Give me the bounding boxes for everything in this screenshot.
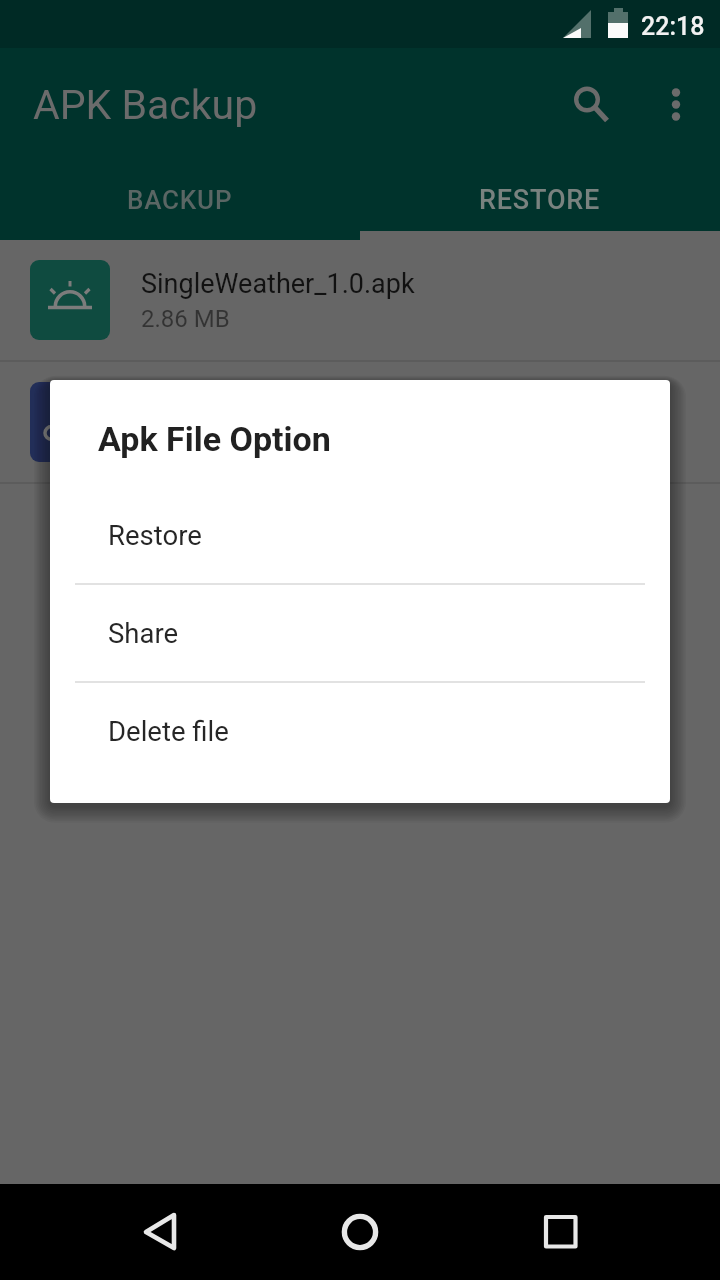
staticText: SingleWeather_1.0.apk bbox=[141, 268, 415, 300]
button[interactable]: Search bbox=[551, 69, 623, 141]
button[interactable]: SingleWeather_1.0.apk bbox=[0, 240, 720, 360]
button[interactable]: More options bbox=[640, 69, 712, 141]
staticText: 22:18 bbox=[641, 12, 705, 41]
staticText: Share bbox=[108, 617, 179, 649]
button[interactable]: Share bbox=[50, 585, 670, 681]
button[interactable]: Restore bbox=[50, 487, 670, 583]
staticText: BACKUP bbox=[127, 185, 233, 215]
staticText: Restore bbox=[108, 519, 202, 551]
staticText: Apk File Option bbox=[98, 419, 331, 459]
button[interactable]: Back bbox=[0, 1184, 240, 1280]
staticText: RESTORE bbox=[479, 184, 601, 216]
button[interactable]: Recent apps bbox=[480, 1184, 720, 1280]
button[interactable]: BACKUP bbox=[0, 161, 360, 240]
staticText: 2.86 MB bbox=[141, 305, 230, 333]
button[interactable] bbox=[0, 362, 720, 482]
button[interactable]: RESTORE bbox=[360, 161, 720, 240]
staticText: APK Backup bbox=[33, 81, 258, 129]
staticText: Delete file bbox=[108, 715, 229, 747]
button[interactable]: Delete file bbox=[50, 683, 670, 779]
button[interactable]: Home bbox=[240, 1184, 480, 1280]
